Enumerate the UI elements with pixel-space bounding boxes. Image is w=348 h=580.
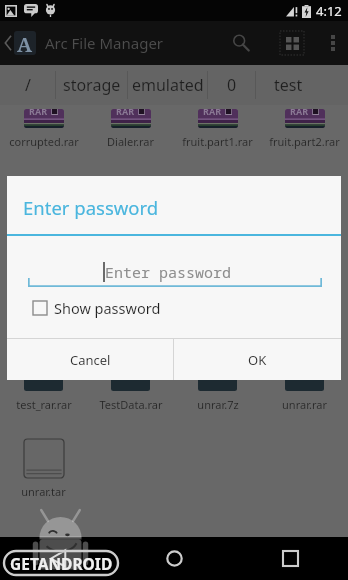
staticText: 0 <box>227 74 237 96</box>
button[interactable]: Change view <box>266 21 318 65</box>
button[interactable]: test <box>256 65 320 105</box>
button[interactable]: Back <box>0 537 116 580</box>
staticText: 4:12 <box>316 2 342 20</box>
button[interactable]: storage <box>56 65 127 105</box>
button[interactable]: Home <box>116 537 232 580</box>
staticText: unrar.tar <box>21 484 66 499</box>
staticText: RAR <box>116 109 135 117</box>
staticText: Dialer.rar <box>107 134 154 149</box>
staticText: A <box>17 31 33 55</box>
button[interactable]: Search <box>216 21 266 65</box>
staticText: OK <box>248 351 267 369</box>
button[interactable]: unrar.7z <box>174 384 261 412</box>
button[interactable]: / <box>0 65 55 105</box>
staticText: unrar.rar <box>282 397 327 412</box>
button[interactable]: RAR <box>261 109 348 149</box>
button[interactable]: unrar.tar <box>0 439 87 499</box>
button[interactable]: Navigate up <box>0 21 36 65</box>
button[interactable]: emulated <box>128 65 207 105</box>
staticText: Arc File Manager <box>45 33 164 53</box>
button[interactable]: RAR <box>0 109 87 149</box>
button[interactable]: test_rar.rar <box>0 384 87 412</box>
button[interactable]: unrar.rar <box>261 384 348 412</box>
staticText: unrar.7z <box>197 397 239 412</box>
staticText: RAR <box>29 109 48 117</box>
staticText: RAR <box>203 109 222 117</box>
staticText: corrupted.rar <box>9 134 79 149</box>
staticText: GETANDROID <box>10 553 113 574</box>
button[interactable]: Recent apps <box>232 537 348 580</box>
staticText: Enter password <box>23 195 159 220</box>
staticText: RAR <box>290 109 309 117</box>
button[interactable]: Cancel <box>7 339 173 380</box>
button[interactable]: 0 <box>208 65 255 105</box>
staticText: Show password <box>54 298 161 318</box>
staticText: fruit.part1.rar <box>182 134 253 149</box>
staticText: TestData.rar <box>99 397 163 412</box>
button[interactable]: Show password <box>33 298 161 318</box>
staticText: test_rar.rar <box>16 397 72 412</box>
button[interactable]: OK <box>174 339 341 380</box>
button[interactable]: TestData.rar <box>87 384 174 412</box>
staticText: storage <box>63 74 121 96</box>
staticText: emulated <box>132 74 204 96</box>
button[interactable]: RAR <box>174 109 261 149</box>
button[interactable]: More options <box>318 21 348 65</box>
staticText: Enter password <box>105 262 232 282</box>
staticText: test <box>274 74 303 96</box>
staticText: / <box>25 74 31 96</box>
button[interactable]: RAR <box>87 109 174 149</box>
staticText: Cancel <box>70 351 111 369</box>
staticText: fruit.part2.rar <box>269 134 340 149</box>
